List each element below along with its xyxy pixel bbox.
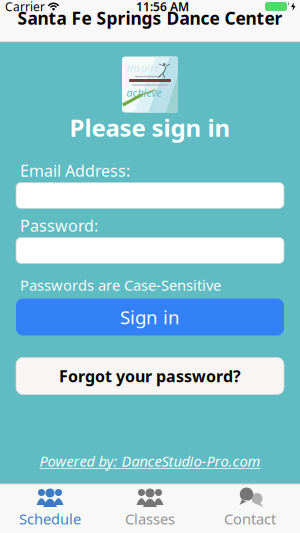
staticText: Sign in [120,305,180,329]
button[interactable]: Powered by: DanceStudio-Pro.com [39,453,260,469]
staticText: 11:56 AM [136,0,189,14]
button[interactable]: Forgot your password? [0,357,300,394]
button[interactable]: Schedule [0,484,100,532]
button[interactable]: Classes [100,484,200,532]
staticText: Carrier [5,0,45,14]
staticText: Passwords are Case-Sensitive [20,275,221,295]
button[interactable]: Contact [200,484,300,532]
staticText: Classes [125,509,175,528]
staticText: Please sign in [69,112,230,143]
staticText: Password: [20,215,98,236]
staticText: Contact [224,509,276,528]
staticText: achieve [126,85,161,100]
button[interactable]: Sign in [0,298,300,335]
staticText: inspire [127,60,159,75]
staticText: Powered by: DanceStudio-Pro.com [39,451,260,471]
staticText: Forgot your password? [59,365,241,387]
staticText: Santa Fe Springs Dance Center [17,6,282,29]
staticText: Email Address: [20,160,130,181]
staticText: Schedule [19,509,81,528]
